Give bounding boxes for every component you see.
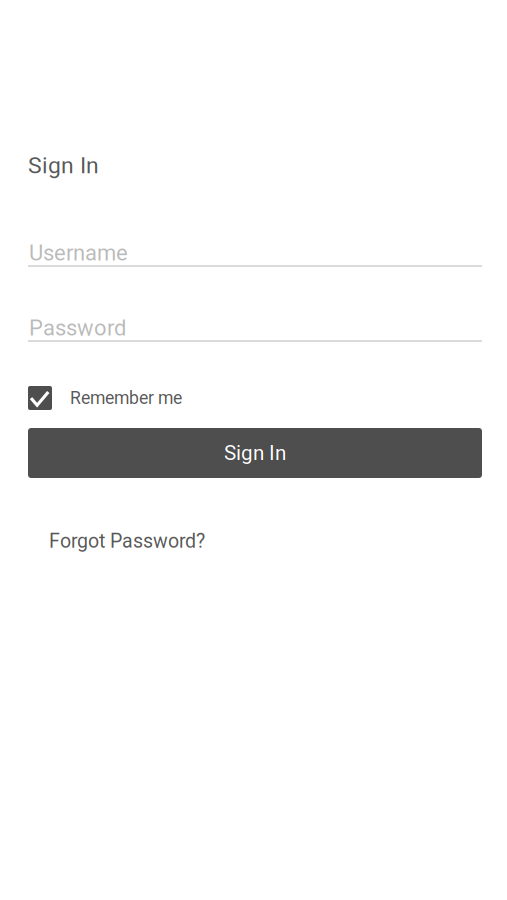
button[interactable]: Forgot Password?	[49, 530, 205, 552]
staticText: Sign In	[28, 152, 99, 179]
staticText: Sign In	[224, 441, 286, 465]
staticText: Forgot Password?	[49, 529, 205, 552]
button[interactable]: Username	[28, 240, 482, 267]
button[interactable]: Remember me	[28, 386, 228, 410]
staticText: Remember me	[70, 388, 182, 408]
staticText: Username	[29, 240, 128, 266]
button[interactable]: Sign In	[28, 428, 482, 478]
staticText: Password	[29, 315, 126, 341]
button[interactable]: Password	[28, 315, 482, 342]
